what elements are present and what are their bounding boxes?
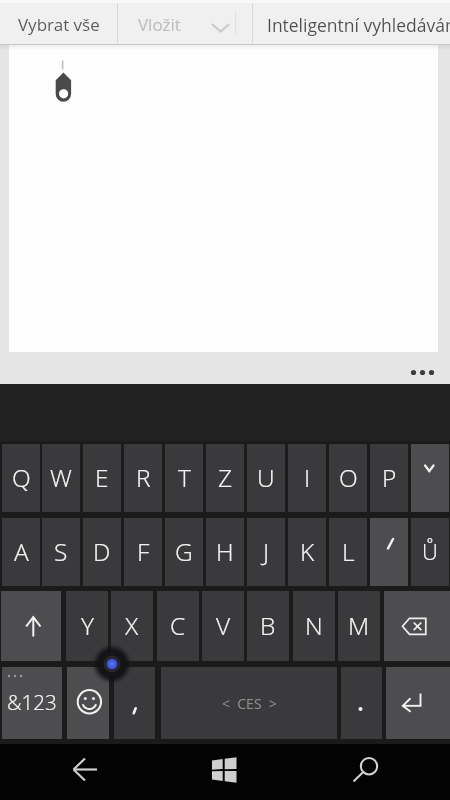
staticText: R [136,461,151,494]
staticText: M [348,609,370,642]
staticText: T [178,461,191,494]
staticText: S [54,535,68,568]
staticText: Vybrat vše [18,13,100,36]
button[interactable]: M [338,591,380,661]
staticText: W [50,461,72,494]
button[interactable] [67,667,109,739]
button[interactable]: S [42,518,80,586]
button[interactable]: C [157,591,199,661]
staticText: < CES > [222,694,277,713]
button[interactable]: H [206,518,244,586]
button[interactable]: &123 [2,667,62,739]
button[interactable]: B [247,591,289,661]
button[interactable]: T [165,444,203,512]
staticText: D [93,535,111,568]
staticText: I [304,461,311,494]
button[interactable]: Z [206,444,244,512]
button[interactable]: Vybrat vše [0,5,117,44]
button[interactable] [55,744,115,800]
button[interactable]: O [329,444,367,512]
staticText: J [263,535,270,568]
staticText: Vložit [138,13,181,36]
button[interactable]: I [288,444,326,512]
staticText: O [339,461,358,494]
staticText: &123 [7,688,57,716]
button[interactable]: A [2,518,40,586]
staticText: N [305,609,323,642]
staticText: Ů [422,536,438,566]
button[interactable]: V [202,591,244,661]
button[interactable] [386,667,450,739]
staticText: H [216,535,234,568]
button[interactable]: Ů [411,518,449,586]
button[interactable] [0,384,450,744]
staticText: Inteligentní vyhledávání [267,13,450,37]
staticText: A [14,535,29,568]
button[interactable] [370,518,408,586]
button[interactable]: L [329,518,367,586]
button[interactable] [195,744,255,800]
button[interactable] [411,444,449,512]
button[interactable]: R [124,444,162,512]
staticText: B [260,609,276,642]
button[interactable]: G [165,518,203,586]
staticText: G [175,535,193,568]
button[interactable]: Q [2,444,40,512]
button[interactable] [1,591,61,661]
button[interactable]: Inteligentní vyhledávání [267,5,450,44]
staticText: Z [218,461,233,494]
staticText: Y [81,609,94,642]
staticText: P [382,461,397,494]
staticText: F [137,535,150,568]
button[interactable]: P [370,444,408,512]
button[interactable]: K [288,518,326,586]
button[interactable]: U [247,444,285,512]
staticText: L [342,535,355,568]
button[interactable] [341,667,382,739]
button[interactable] [114,667,155,739]
button[interactable]: F [124,518,162,586]
button[interactable]: Y [66,591,108,661]
button[interactable] [200,0,252,44]
button[interactable]: E [83,444,121,512]
staticText: V [216,609,231,642]
staticText: K [300,535,315,568]
staticText: X [125,609,139,642]
staticText: U [257,461,275,494]
button[interactable]: W [42,444,80,512]
button[interactable]: X [111,591,153,661]
button[interactable] [335,744,395,800]
button[interactable]: N [293,591,335,661]
button[interactable]: < CES > [161,667,337,739]
button[interactable]: J [247,518,285,586]
button[interactable]: Vložit [118,5,200,44]
staticText: E [95,461,109,494]
button[interactable]: D [83,518,121,586]
staticText: Q [12,461,31,494]
staticText: C [170,609,186,642]
button[interactable] [384,591,450,661]
